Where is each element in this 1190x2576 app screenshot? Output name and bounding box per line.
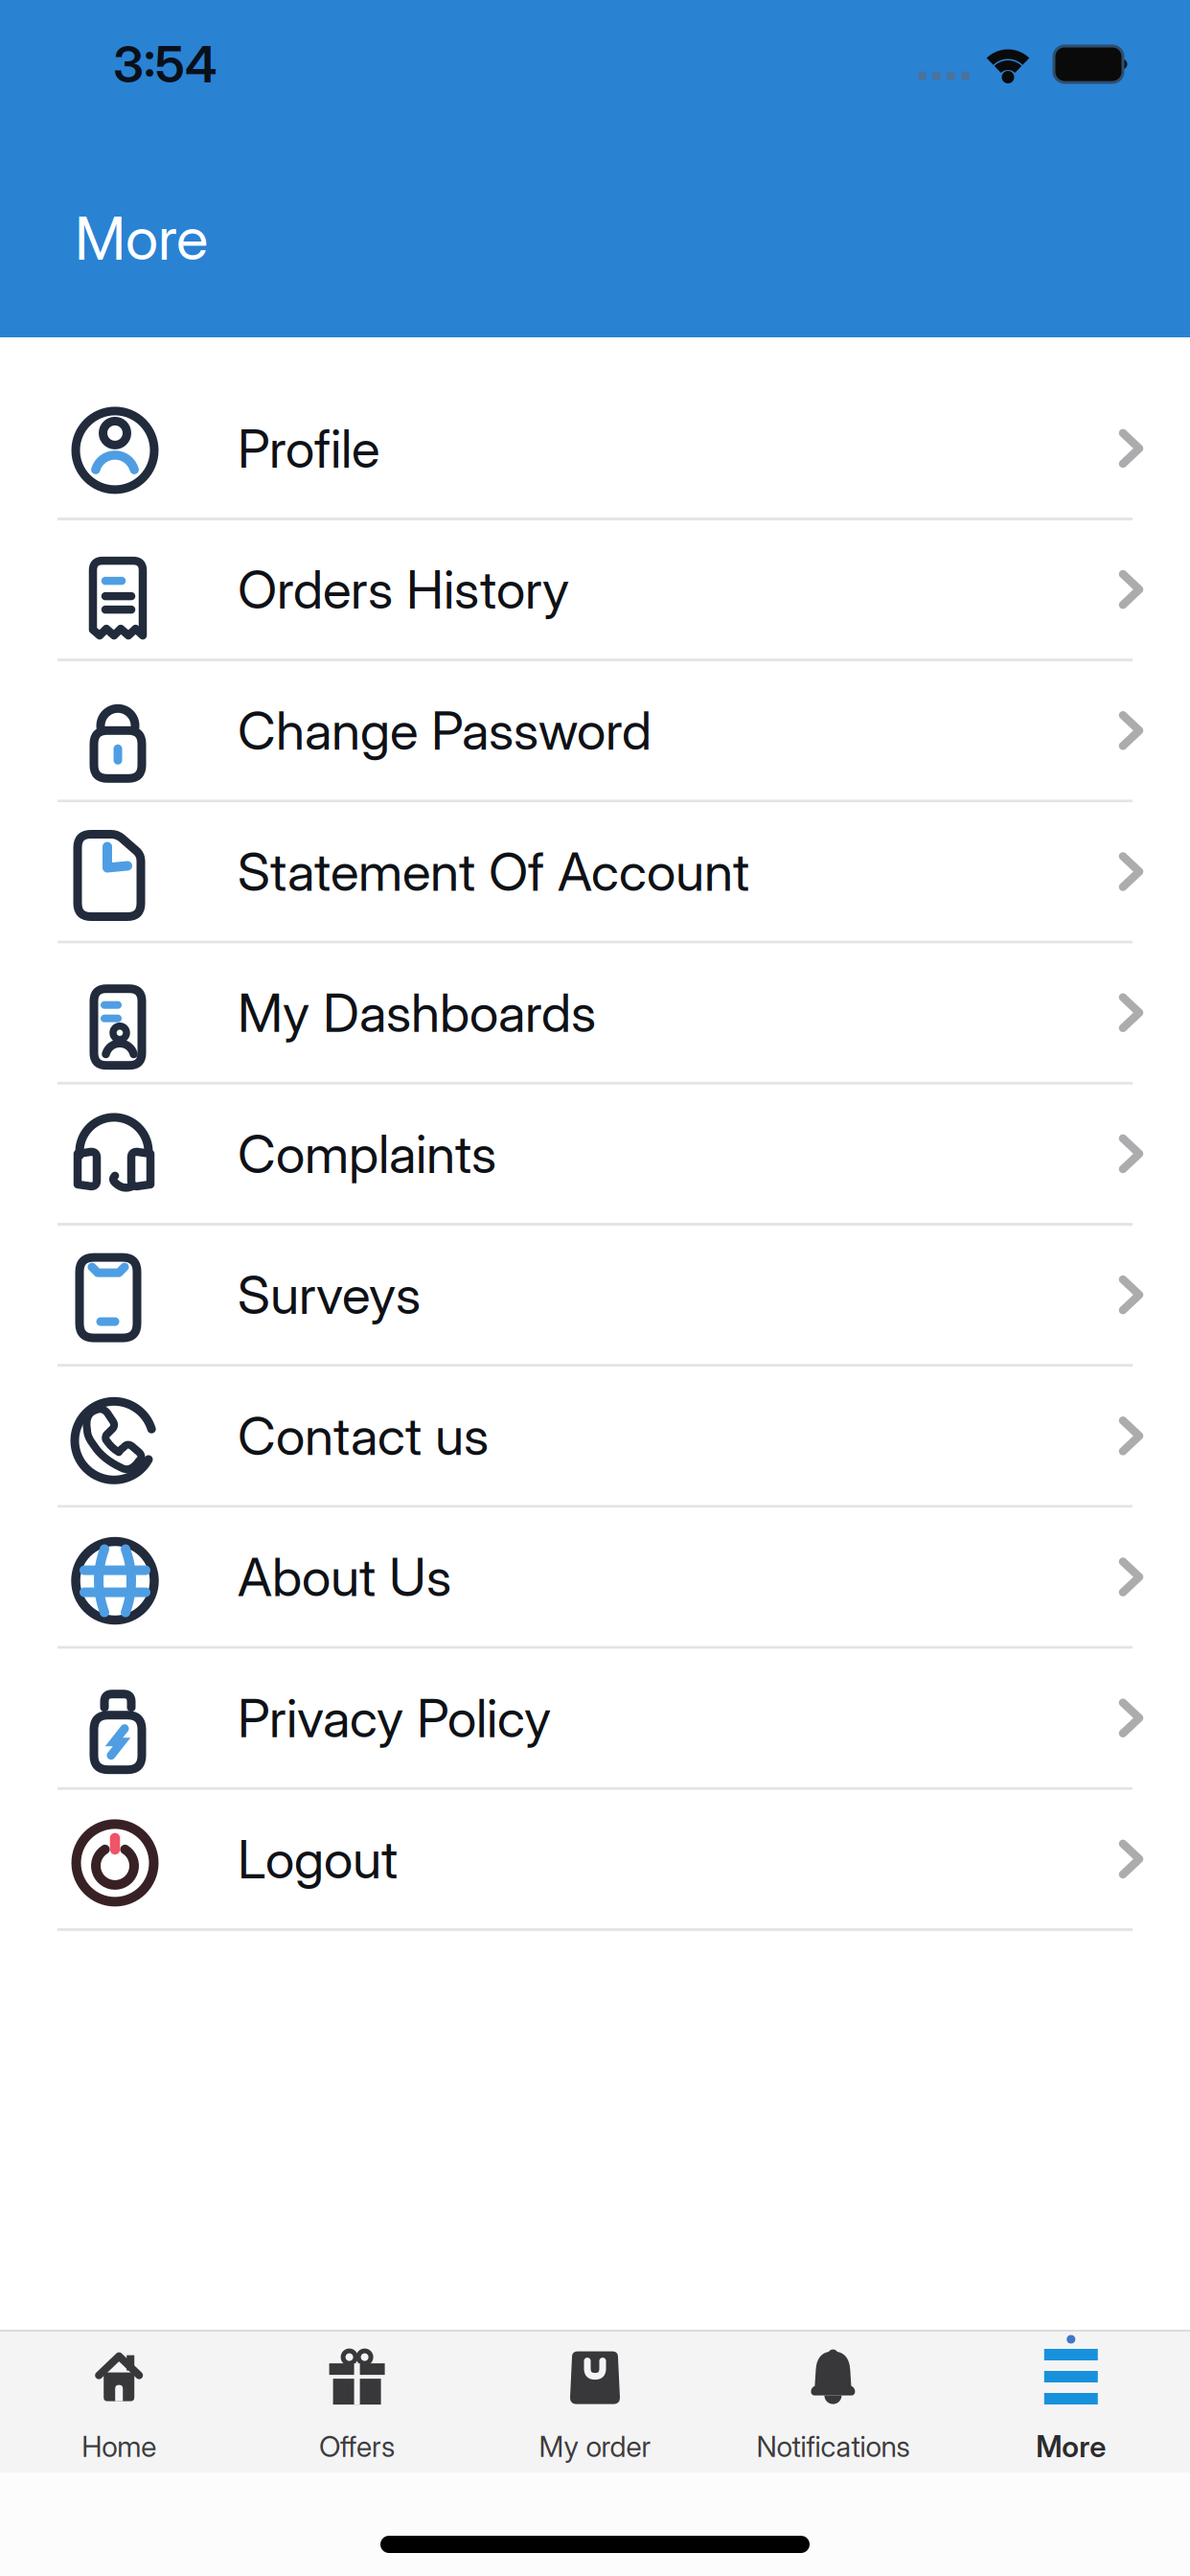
button[interactable]: More [1036,2348,1106,2464]
button[interactable]: Change Password [0,661,1190,803]
staticText: Orders History [238,558,569,621]
button[interactable]: Orders History [0,520,1190,661]
staticText: Profile [238,416,379,480]
button[interactable]: Contact us [0,1367,1190,1508]
button[interactable]: Home [82,2348,156,2464]
staticText: Offers [319,2429,395,2464]
staticText: My order [539,2429,651,2464]
staticText: Statement Of Account [238,840,749,903]
button[interactable]: Offers [319,2348,395,2464]
staticText: Notifications [756,2429,910,2464]
button[interactable]: About Us [0,1508,1190,1649]
button[interactable]: Profile [0,379,1190,520]
staticText: Contact us [238,1404,489,1468]
staticText: My Dashboards [238,981,596,1044]
button[interactable]: Privacy Policy [0,1649,1190,1790]
staticText: Privacy Policy [238,1686,551,1750]
staticText: More [1036,2428,1106,2464]
staticText: Home [82,2429,156,2464]
staticText: More [75,202,208,274]
button[interactable]: My order [539,2348,651,2464]
staticText: About Us [238,1545,451,1609]
button[interactable]: Notifications [756,2348,910,2464]
button[interactable]: My Dashboards [0,944,1190,1085]
button[interactable]: Surveys [0,1226,1190,1367]
button[interactable]: Complaints [0,1085,1190,1226]
staticText: Complaints [238,1122,496,1186]
staticText: 3:54 [113,34,217,94]
staticText: Surveys [238,1263,421,1327]
button[interactable]: Logout [0,1790,1190,1931]
button[interactable]: Statement Of Account [0,803,1190,944]
staticText: Logout [238,1827,398,1891]
staticText: Change Password [238,699,652,762]
